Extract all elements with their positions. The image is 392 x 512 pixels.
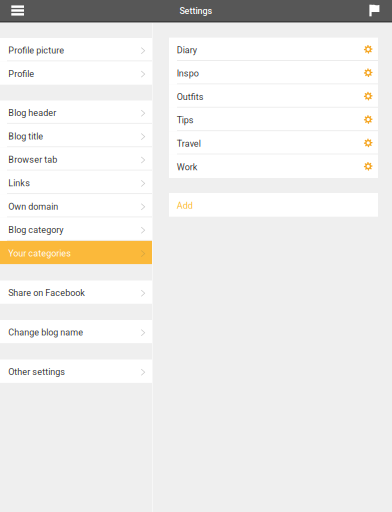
staticText: Travel bbox=[177, 138, 201, 149]
staticText: Work bbox=[177, 162, 198, 172]
staticText: Inspo bbox=[177, 68, 199, 79]
staticText: Blog title bbox=[8, 131, 43, 142]
staticText: Blog header bbox=[8, 108, 56, 118]
button[interactable]: Blog header bbox=[0, 100, 152, 124]
button[interactable]: Add bbox=[169, 193, 378, 217]
button[interactable]: Share on Facebook bbox=[0, 280, 152, 304]
staticText: Change blog name bbox=[8, 327, 83, 338]
button[interactable]: Profile bbox=[0, 61, 152, 85]
button[interactable]: Menu bbox=[0, 0, 36, 21]
button[interactable]: Own domain bbox=[0, 194, 152, 217]
staticText: Other settings bbox=[8, 367, 65, 377]
staticText: Profile bbox=[8, 69, 34, 79]
button[interactable]: Other settings bbox=[0, 359, 152, 383]
button[interactable]: Work bbox=[169, 155, 378, 178]
staticText: Diary bbox=[177, 45, 197, 55]
staticText: Own domain bbox=[8, 201, 58, 212]
button[interactable]: Tips bbox=[169, 108, 378, 131]
button[interactable]: Links bbox=[0, 171, 152, 194]
button[interactable]: Profile picture bbox=[0, 38, 152, 61]
button[interactable]: Change blog name bbox=[0, 320, 152, 343]
button[interactable]: Travel bbox=[169, 131, 378, 155]
button[interactable]: Outfits bbox=[169, 84, 378, 108]
staticText: Your categories bbox=[8, 248, 71, 259]
button[interactable]: Blog category bbox=[0, 217, 152, 241]
staticText: Tips bbox=[177, 115, 194, 125]
staticText: Add bbox=[177, 200, 193, 211]
staticText: Links bbox=[8, 178, 30, 188]
button[interactable]: Blog title bbox=[0, 124, 152, 147]
staticText: Profile picture bbox=[8, 45, 64, 56]
staticText: Outfits bbox=[177, 92, 204, 102]
button[interactable]: Diary bbox=[169, 38, 378, 61]
staticText: Share on Facebook bbox=[8, 288, 85, 298]
button[interactable]: Browser tab bbox=[0, 147, 152, 171]
staticText: Browser tab bbox=[8, 154, 57, 165]
staticText: Settings bbox=[179, 6, 212, 16]
button[interactable]: Inspo bbox=[169, 61, 378, 84]
button[interactable]: Report bbox=[358, 0, 392, 21]
button[interactable]: Your categories bbox=[0, 241, 152, 264]
staticText: Blog category bbox=[8, 225, 63, 235]
